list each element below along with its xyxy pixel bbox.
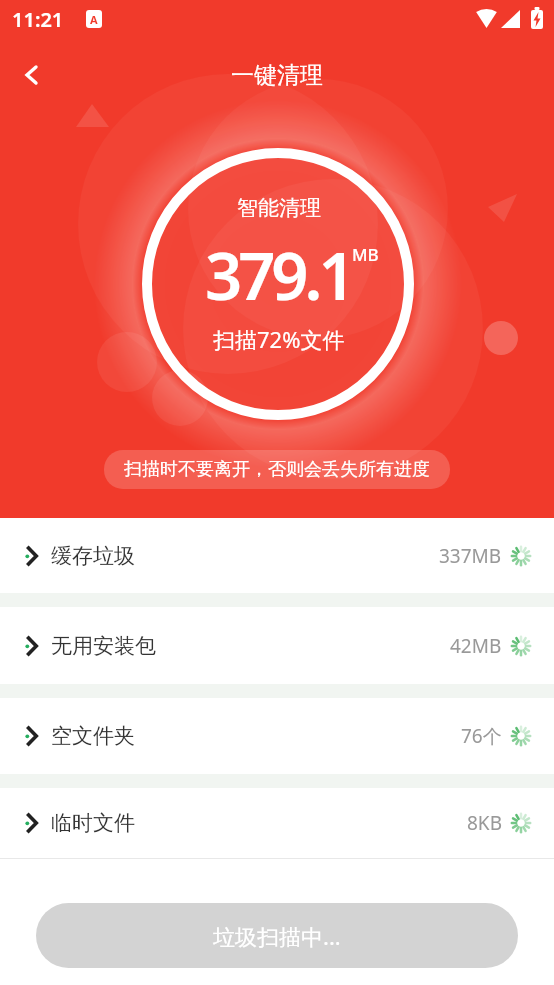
button[interactable]: 缓存垃圾	[0, 518, 554, 593]
staticText: 一键清理	[231, 61, 323, 90]
staticText: 379.1	[205, 231, 352, 320]
button[interactable]: 临时文件	[0, 788, 554, 858]
staticText: 空文件夹	[51, 723, 135, 749]
staticText: 缓存垃圾	[51, 543, 135, 569]
staticText: 垃圾扫描中...	[213, 921, 341, 951]
staticText: 扫描72%文件	[213, 324, 345, 354]
staticText: 智能清理	[237, 195, 321, 221]
staticText: 无用安装包	[51, 633, 156, 659]
staticText: 扫描时不要离开，否则会丢失所有进度	[124, 458, 430, 481]
button[interactable]: 无用安装包	[0, 607, 554, 684]
button[interactable]: 空文件夹	[0, 698, 554, 774]
staticText: 337MB	[439, 543, 502, 569]
button[interactable]	[14, 57, 50, 93]
staticText: 76个	[461, 723, 502, 749]
staticText: 8KB	[467, 810, 502, 836]
staticText: A	[90, 12, 98, 27]
staticText: 11:21	[12, 6, 64, 33]
staticText: 42MB	[450, 633, 502, 659]
staticText: MB	[352, 243, 379, 266]
button[interactable]: 垃圾扫描中...	[36, 903, 518, 968]
button[interactable]: 扫描时不要离开，否则会丢失所有进度	[104, 450, 450, 489]
staticText: 临时文件	[51, 810, 135, 836]
